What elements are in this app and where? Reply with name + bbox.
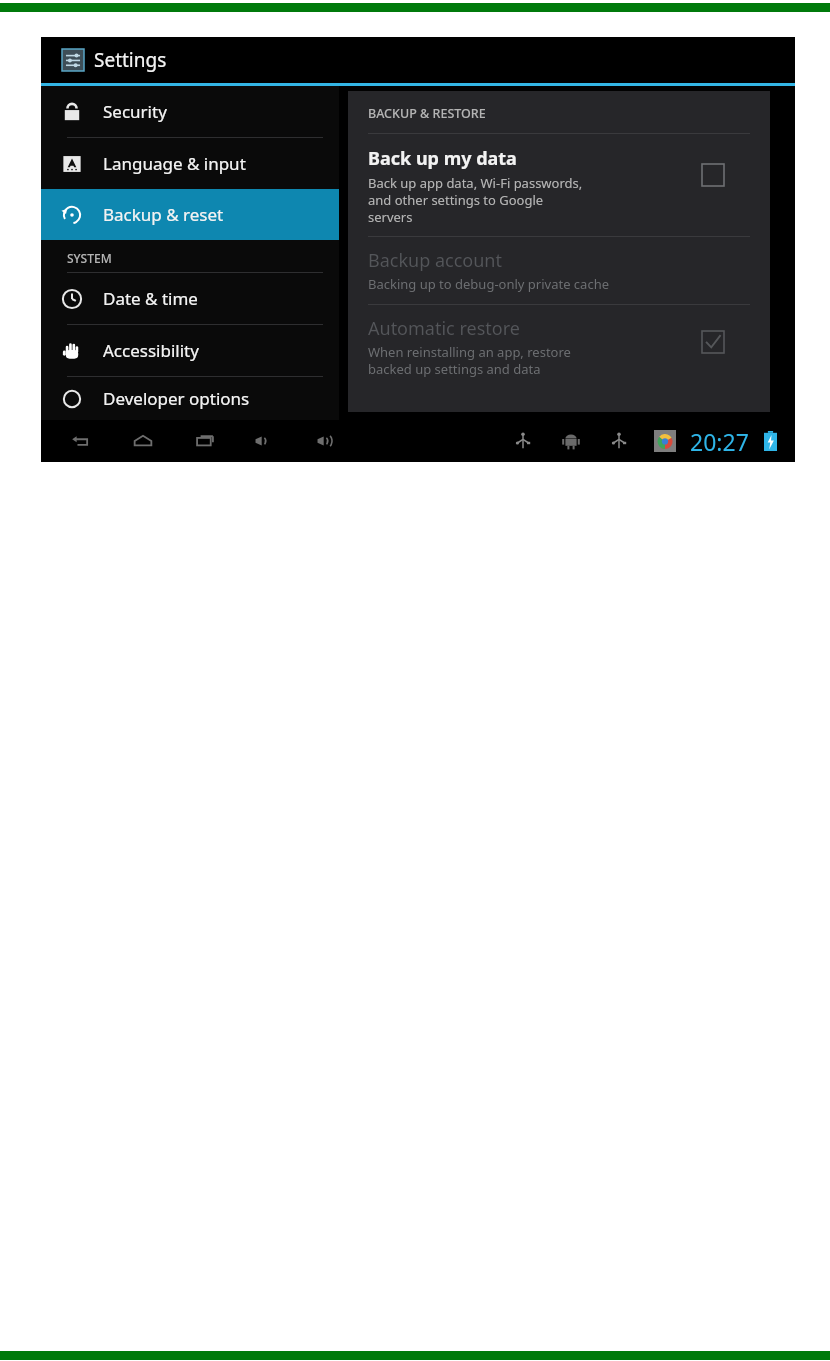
button[interactable]: Back up my data [368,134,750,236]
button[interactable]: Language & input [41,138,339,189]
staticText: Language & input [103,152,246,175]
staticText: Backup account [368,248,502,273]
button[interactable]: Recent apps [183,421,227,461]
staticText: Back up my data [368,146,517,171]
button[interactable]: Volume up [303,421,347,461]
button[interactable]: Home [121,421,165,461]
staticText: SYSTEM [67,250,112,266]
button[interactable]: Date & time [41,273,339,324]
staticText: Backing up to debug-only private cache [368,275,609,293]
button[interactable]: Backup account [368,237,750,304]
staticText: Back up app data, Wi-Fi passwords, and o… [368,174,583,226]
button[interactable]: Security [41,86,339,137]
staticText: BACKUP & RESTORE [368,105,486,122]
button[interactable]: Developer options [41,377,339,420]
button[interactable]: Volume down [241,421,285,461]
staticText: Security [103,100,167,123]
button[interactable]: Accessibility [41,325,339,376]
button[interactable]: Back [59,421,103,461]
staticText: When reinstalling an app, restore backed… [368,343,571,378]
staticText: Settings [94,47,167,73]
staticText: Date & time [103,287,198,310]
button[interactable]: Automatic restore [368,305,750,388]
staticText: Automatic restore [368,316,520,341]
staticText: Accessibility [103,339,199,362]
staticText: 20:27 [690,426,749,457]
staticText: Developer options [103,387,250,410]
staticText: Backup & reset [103,203,224,226]
button[interactable]: Backup & reset [41,189,339,240]
